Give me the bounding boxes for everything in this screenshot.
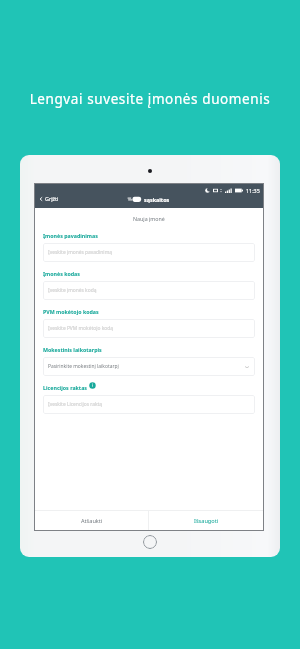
button[interactable]: Įveskite PVM mokėtojo kodą bbox=[43, 319, 255, 338]
staticText: PVM mokėtojo kodas bbox=[43, 308, 99, 315]
button[interactable]: Įveskite įmonės pavadinimą bbox=[43, 243, 255, 262]
button[interactable]: Home bbox=[143, 535, 157, 549]
button[interactable]: Įveskite įmonės kodą bbox=[43, 281, 255, 300]
staticText: Mokestinis laikotarpis bbox=[43, 346, 102, 353]
staticText: Atšaukti bbox=[81, 517, 103, 525]
staticText: Įmonės kodas bbox=[43, 270, 80, 277]
button[interactable]: Išsaugoti bbox=[149, 511, 263, 530]
staticText: Įveskite PVM mokėtojo kodą bbox=[48, 325, 113, 332]
staticText: sąskaitos bbox=[144, 196, 170, 203]
staticText: Grįžti bbox=[45, 195, 59, 202]
button[interactable]: Įveskite Licencijos raktą bbox=[43, 395, 255, 414]
button[interactable]: Atšaukti bbox=[35, 511, 148, 530]
staticText: Įveskite Licencijos raktą bbox=[48, 401, 103, 408]
button[interactable]: Back bbox=[39, 195, 59, 202]
staticText: Nauja įmonė bbox=[133, 215, 165, 222]
staticText: Lengvai suvesite įmonės duomenis bbox=[0, 90, 300, 108]
staticText: Licencijos raktas bbox=[43, 384, 87, 391]
button[interactable]: Informacija bbox=[89, 382, 96, 389]
staticText: Išsaugoti bbox=[194, 517, 219, 525]
staticText: Pasirinkite mokestinį laikotarpį bbox=[48, 363, 119, 370]
button[interactable]: Pasirinkite mokestinį laikotarpį bbox=[43, 357, 255, 376]
staticText: Įveskite įmonės pavadinimą bbox=[48, 249, 112, 256]
staticText: Įveskite įmonės kodą bbox=[48, 287, 97, 294]
staticText: Įmonės pavadinimas bbox=[43, 232, 98, 239]
staticText: 11:35 bbox=[246, 187, 260, 194]
